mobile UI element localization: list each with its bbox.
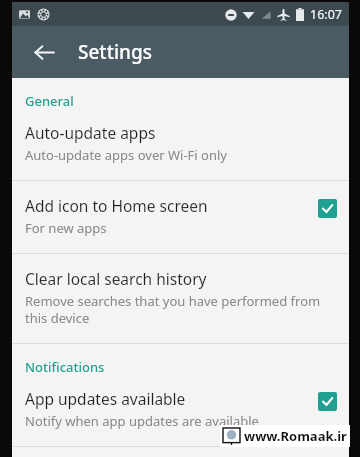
- button[interactable]: App updates available: [12, 376, 349, 446]
- staticText: 16:07: [310, 6, 342, 23]
- button[interactable]: Clear local search history: [12, 254, 349, 343]
- staticText: Clear local search history: [25, 268, 207, 289]
- button[interactable]: Toggle setting: [318, 199, 337, 218]
- staticText: Notifications: [25, 358, 105, 376]
- button[interactable]: Toggle setting: [318, 392, 337, 411]
- staticText: Auto-update apps: [25, 122, 156, 143]
- staticText: Notify when app updates are available: [25, 412, 259, 430]
- button[interactable]: Back: [24, 32, 64, 72]
- button[interactable]: Add icon to Home screen: [12, 181, 349, 253]
- staticText: Settings: [78, 39, 152, 65]
- button[interactable]: Auto-update apps: [12, 110, 349, 180]
- staticText: General: [25, 92, 74, 110]
- staticText: Remove searches that you have performed …: [25, 292, 337, 327]
- staticText: Add icon to Home screen: [25, 195, 208, 216]
- staticText: For new apps: [25, 219, 107, 237]
- staticText: App updates available: [25, 388, 186, 409]
- staticText: Auto-update apps over Wi-Fi only: [25, 146, 227, 164]
- staticText: www.Romaak.ir: [244, 427, 347, 445]
